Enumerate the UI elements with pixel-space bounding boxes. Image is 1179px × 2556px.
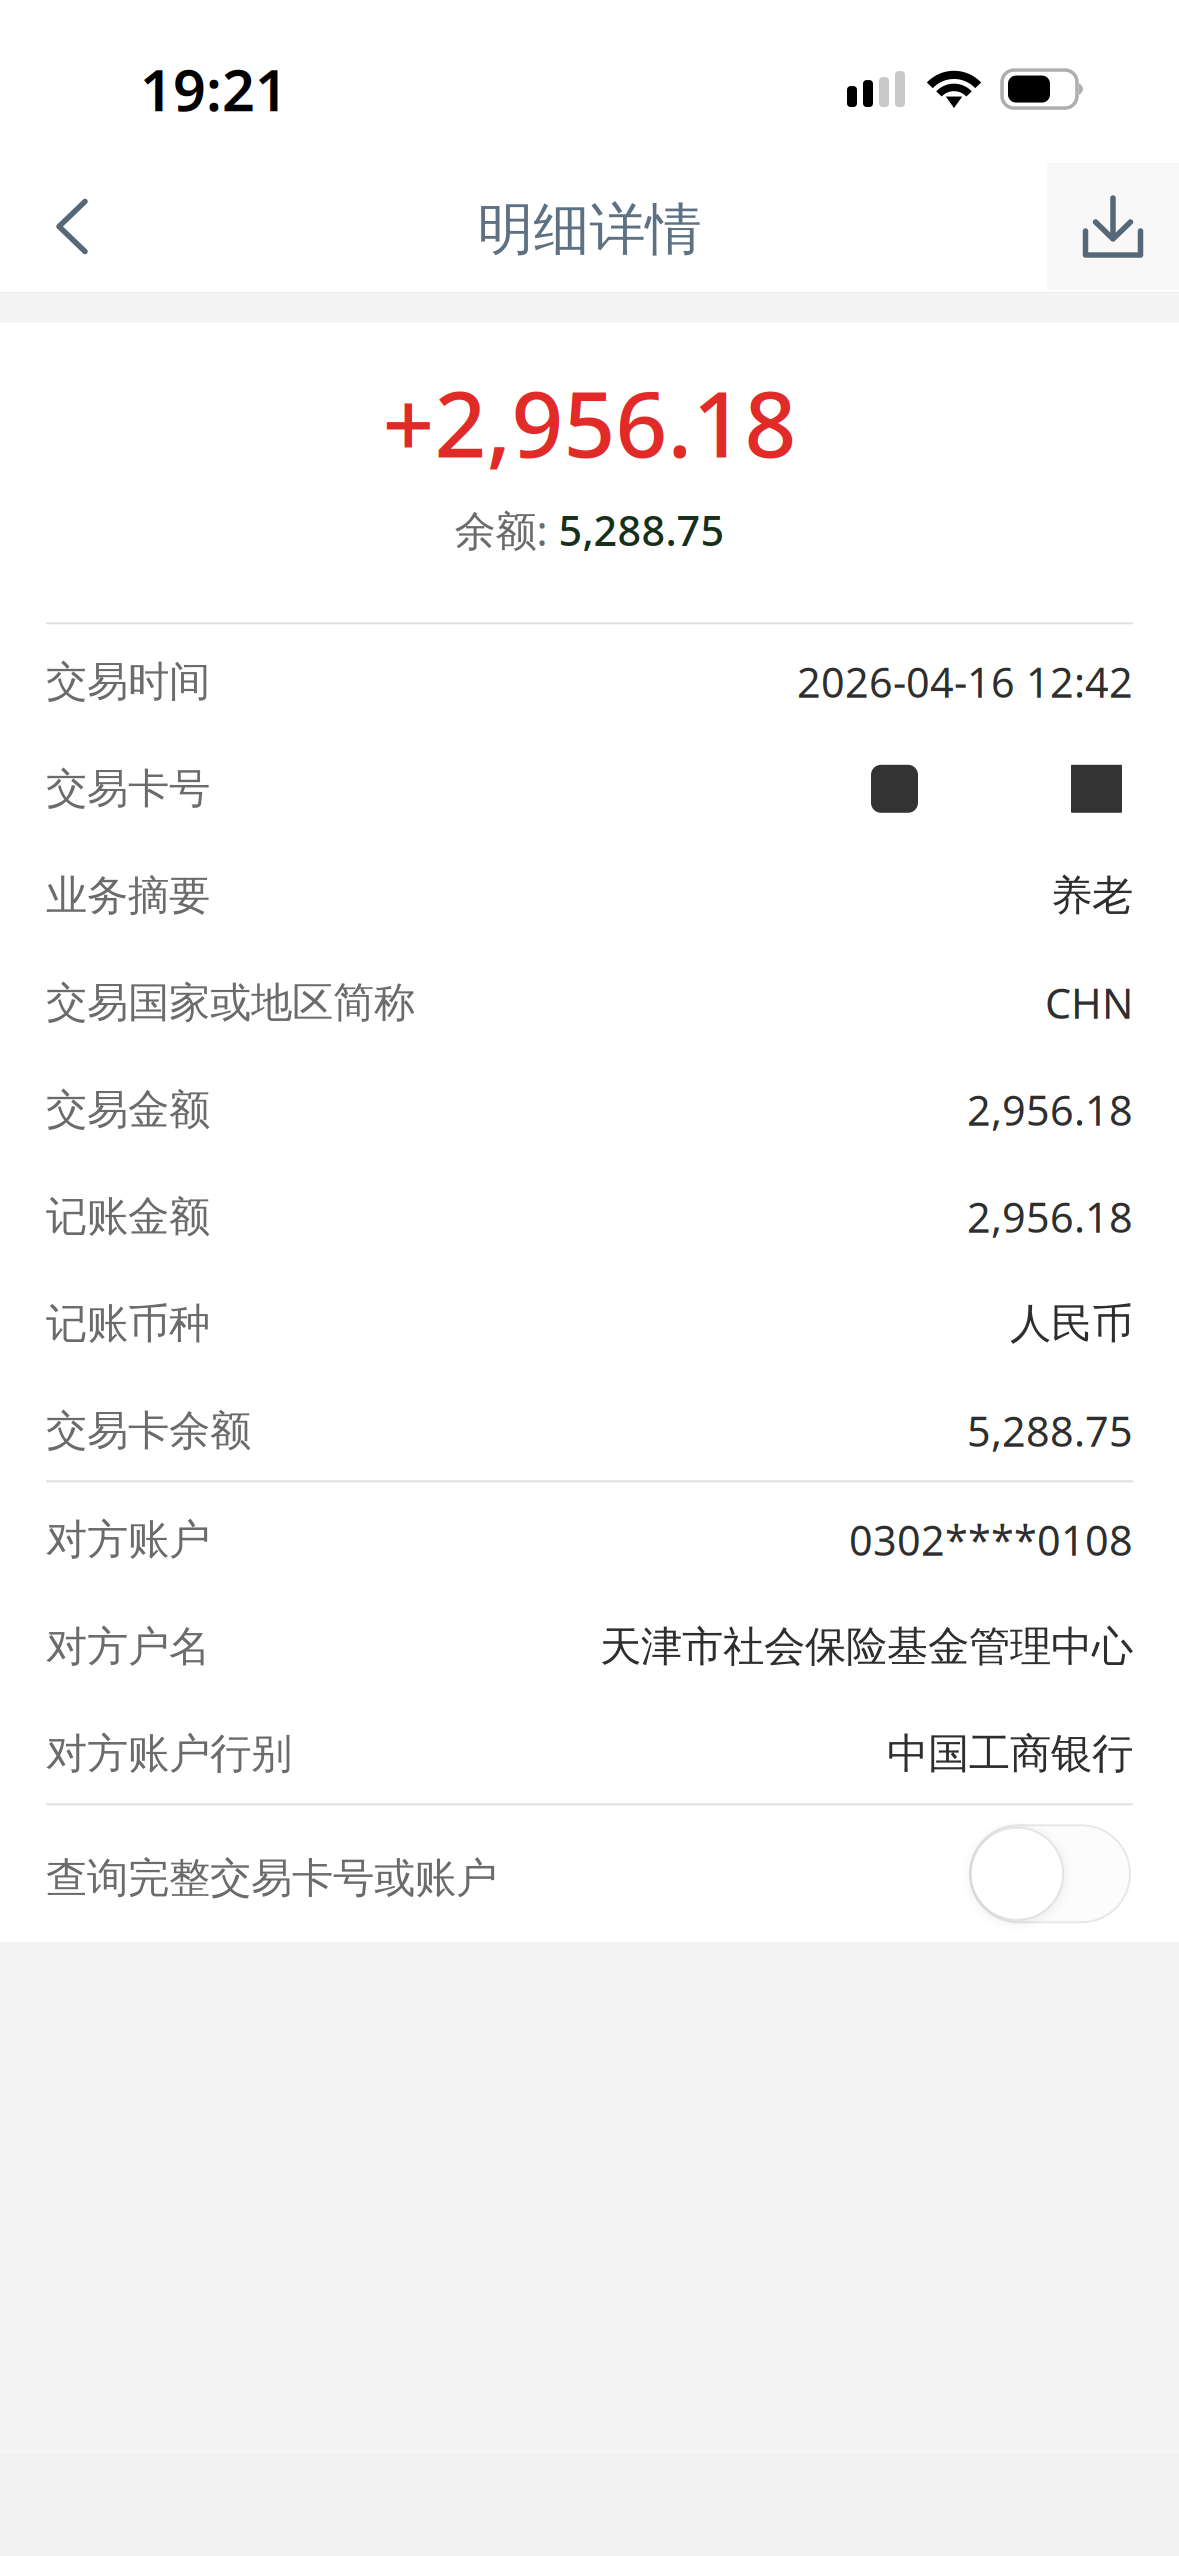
staticText: 中国工商银行 [887,1728,1133,1779]
staticText: 记账币种 [46,1298,210,1349]
staticText: 2,956.18 [967,1189,1133,1244]
staticText: 交易卡号 [46,763,210,814]
staticText: 5,288.75 [558,502,724,557]
staticText: 交易时间 [46,656,210,707]
staticText: 明细详情 [477,195,701,264]
staticText: 19:21 [140,51,288,127]
staticText: 业务摘要 [46,870,210,921]
staticText: 交易金额 [46,1084,210,1135]
staticText: 0302****0108 [849,1512,1133,1567]
staticText: 2,956.18 [967,1082,1133,1137]
staticText: 查询完整交易卡号或账户 [46,1853,497,1904]
staticText: 对方户名 [46,1621,210,1672]
staticText: 余额: [454,502,558,557]
staticText: 交易国家或地区简称 [46,977,415,1028]
staticText: 记账金额 [46,1191,210,1242]
button[interactable]: 查询完整交易卡号或账户 [0,1805,1179,1942]
staticText: 交易卡余额 [46,1405,251,1456]
button[interactable]: 下载 [1047,147,1179,290]
staticText: 养老 [1051,870,1133,921]
staticText: 5,288.75 [967,1403,1133,1458]
staticText: CHN [1045,975,1133,1030]
staticText: 对方账户行别 [46,1728,292,1779]
staticText: +2,956.18 [382,362,796,482]
staticText: 对方账户 [46,1514,210,1565]
staticText: 天津市社会保险基金管理中心 [600,1621,1133,1672]
button[interactable]: 返回 [24,150,120,286]
staticText: 2026-04-16 12:42 [797,654,1133,709]
staticText: 人民币 [1010,1298,1133,1349]
